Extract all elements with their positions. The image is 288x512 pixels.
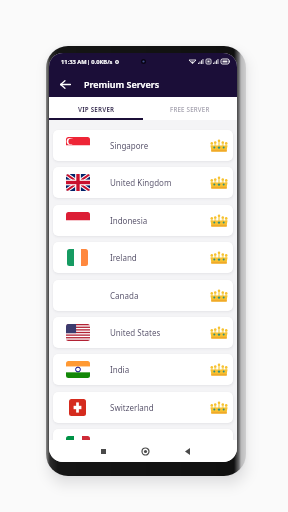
button[interactable]: Singapore: [53, 130, 233, 161]
button[interactable]: Indonesia: [53, 205, 233, 236]
button[interactable]: Home: [137, 443, 153, 459]
button[interactable]: Back: [179, 443, 195, 459]
button[interactable]: VIP SERVER: [49, 97, 143, 120]
button[interactable]: United Kingdom: [53, 167, 233, 198]
staticText: Switzerland: [110, 402, 154, 413]
button[interactable]: United States: [53, 317, 233, 348]
staticText: United Kingdom: [110, 177, 172, 188]
staticText: United States: [110, 327, 161, 338]
button[interactable]: FREE SERVER: [143, 97, 237, 120]
button[interactable]: Switzerland: [53, 392, 233, 423]
staticText: Ireland: [110, 252, 137, 263]
button[interactable]: Back: [54, 73, 76, 95]
button[interactable]: Recents: [95, 443, 111, 459]
staticText: Canada: [110, 290, 139, 301]
staticText: FREE SERVER: [170, 105, 210, 113]
staticText: India: [110, 364, 130, 375]
staticText: Singapore: [110, 140, 149, 151]
button[interactable]: Ireland: [53, 242, 233, 273]
staticText: VIP SERVER: [78, 105, 115, 113]
button[interactable]: Canada: [53, 280, 233, 311]
staticText: Premium Servers: [84, 78, 160, 90]
staticText: 11:33 AM| 0.0KB/s: [61, 58, 113, 66]
button[interactable]: [53, 429, 233, 440]
staticText: Indonesia: [110, 215, 148, 226]
button[interactable]: India: [53, 354, 233, 385]
